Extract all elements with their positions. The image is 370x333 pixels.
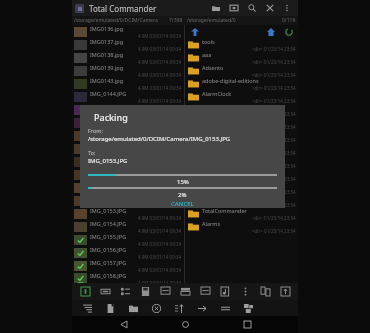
- button[interactable]: IMG0136.jpg: [72, 25, 184, 38]
- staticText: <dir> 01/23/14 23:54: [252, 59, 296, 64]
- staticText: 7/398: [169, 17, 183, 24]
- staticText: Total Commander: [89, 3, 157, 14]
- button[interactable]: IMG_0157.JPG: [72, 259, 184, 272]
- button[interactable]: Refresh: [284, 27, 294, 37]
- button[interactable]: IMG0139.jpg: [72, 64, 184, 77]
- button[interactable]: Close: [264, 2, 276, 14]
- button[interactable]: Android: [185, 103, 298, 116]
- staticText: /storage/emulated/0: [187, 17, 236, 24]
- button[interactable]: Pack: [175, 283, 195, 300]
- button[interactable]: CANCEL: [80, 200, 285, 208]
- button[interactable]: Compare: [215, 300, 235, 316]
- button[interactable]: Alarms: [185, 220, 298, 233]
- button[interactable]: IMG0143.jpg: [72, 77, 184, 90]
- button[interactable]: Search: [246, 2, 258, 14]
- button[interactable]: aaa: [185, 51, 298, 64]
- button[interactable]: Unpack: [195, 283, 215, 300]
- staticText: symantec_persisted: [202, 181, 254, 188]
- button[interactable]: Sort by name: [169, 300, 189, 316]
- button[interactable]: IMG_0145.JPG: [72, 103, 184, 116]
- button[interactable]: IMG_0148.JPG: [72, 142, 184, 155]
- button[interactable]: DCIM: [185, 142, 298, 155]
- button[interactable]: Select: [115, 283, 135, 300]
- button[interactable]: IMG_0158.JPG: [72, 272, 184, 283]
- staticText: 4.9M 03/01/14 09:34: [138, 33, 182, 38]
- staticText: IMG0137.jpg: [90, 38, 124, 45]
- staticText: TotalCommander: [202, 207, 247, 214]
- staticText: <dir> 01/23/14 23:54: [252, 228, 296, 233]
- staticText: Adsento: [202, 64, 224, 71]
- button[interactable]: Go to: [192, 300, 212, 316]
- button[interactable]: IMG_0144.JPG: [72, 90, 184, 103]
- button[interactable]: Download: [185, 168, 298, 181]
- button[interactable]: thinkfree: [185, 194, 298, 207]
- staticText: aaa: [202, 51, 212, 58]
- button[interactable]: IMG_0147.JPG: [72, 129, 184, 142]
- button[interactable]: Play: [215, 283, 235, 300]
- button[interactable]: Adsento: [185, 64, 298, 77]
- button[interactable]: Exchange: [255, 283, 275, 300]
- staticText: <dir> 01/23/14 23:54: [252, 189, 296, 194]
- staticText: IMG_0155.JPG: [90, 233, 127, 240]
- staticText: IMG_0158.JPG: [90, 272, 127, 279]
- button[interactable]: adobe-digital-editions: [185, 77, 298, 90]
- button[interactable]: Exit: [275, 283, 295, 300]
- button[interactable]: Documents: [185, 155, 298, 168]
- button[interactable]: Up one level: [190, 27, 200, 37]
- staticText: Packing: [94, 111, 128, 123]
- button[interactable]: Select group: [238, 300, 258, 316]
- staticText: <dir> 01/23/14 23:54: [252, 176, 296, 181]
- staticText: IMG_0151.JPG: [90, 181, 127, 188]
- button[interactable]: IMG_0149.JPG: [72, 155, 184, 168]
- button[interactable]: Folder: [210, 2, 222, 14]
- button[interactable]: Sort options: [77, 300, 97, 316]
- button[interactable]: More options: [281, 2, 293, 14]
- button[interactable]: bluetooth: [185, 129, 298, 142]
- button[interactable]: IMG_0155.JPG: [72, 233, 184, 246]
- button[interactable]: TotalCommander: [185, 207, 298, 220]
- button[interactable]: IMG0138.jpg: [72, 51, 184, 64]
- button[interactable]: IMG_0154.JPG: [72, 220, 184, 233]
- button[interactable]: IMG_0152.JPG: [72, 194, 184, 207]
- button[interactable]: More: [235, 283, 255, 300]
- button[interactable]: Box: [228, 2, 240, 14]
- button[interactable]: Move: [155, 283, 175, 300]
- button[interactable]: IMG_0146.JPG: [72, 116, 184, 129]
- button[interactable]: IMG0137.jpg: [72, 38, 184, 51]
- button[interactable]: IMG_0153.JPG: [72, 207, 184, 220]
- staticText: From:: [88, 127, 103, 134]
- staticText: IMG_0147.JPG: [90, 129, 127, 136]
- button[interactable]: Properties: [75, 283, 95, 300]
- button[interactable]: IMG_0156.JPG: [72, 246, 184, 259]
- staticText: <dir> 01/23/14 23:54: [252, 98, 296, 103]
- button[interactable]: backups: [185, 116, 298, 129]
- button[interactable]: Back: [114, 316, 134, 333]
- button[interactable]: Copy: [135, 283, 155, 300]
- staticText: adobe-digital-editions: [202, 77, 259, 84]
- button[interactable]: Home: [175, 316, 195, 333]
- staticText: <dir> 01/23/14 23:54: [252, 202, 296, 207]
- button[interactable]: IMG_0150.JPG: [72, 168, 184, 181]
- button[interactable]: Deselect: [146, 300, 166, 316]
- button[interactable]: AlarmClock: [185, 90, 298, 103]
- staticText: 0/119: [282, 17, 296, 24]
- button[interactable]: Recent apps: [237, 316, 257, 333]
- staticText: 4.9M 03/01/14 09:34: [138, 280, 182, 283]
- staticText: 4.9M 03/01/14 09:34: [138, 202, 182, 207]
- button[interactable]: tools: [185, 38, 298, 51]
- button[interactable]: Rename: [95, 283, 115, 300]
- button[interactable]: App icon: [75, 4, 84, 13]
- staticText: 4.9M 03/01/14 09:34: [138, 254, 182, 259]
- button[interactable]: New folder: [123, 300, 143, 316]
- staticText: /storage/emulated/0/DCIM/Camera/IMG_0153…: [88, 135, 231, 143]
- button[interactable]: symantec_persisted: [185, 181, 298, 194]
- button[interactable]: IMG_0151.JPG: [72, 181, 184, 194]
- staticText: IMG_0145.JPG: [90, 103, 127, 110]
- staticText: <dir> 01/23/14 23:54: [252, 137, 296, 142]
- button[interactable]: Home: [266, 27, 276, 37]
- button[interactable]: New file: [100, 300, 120, 316]
